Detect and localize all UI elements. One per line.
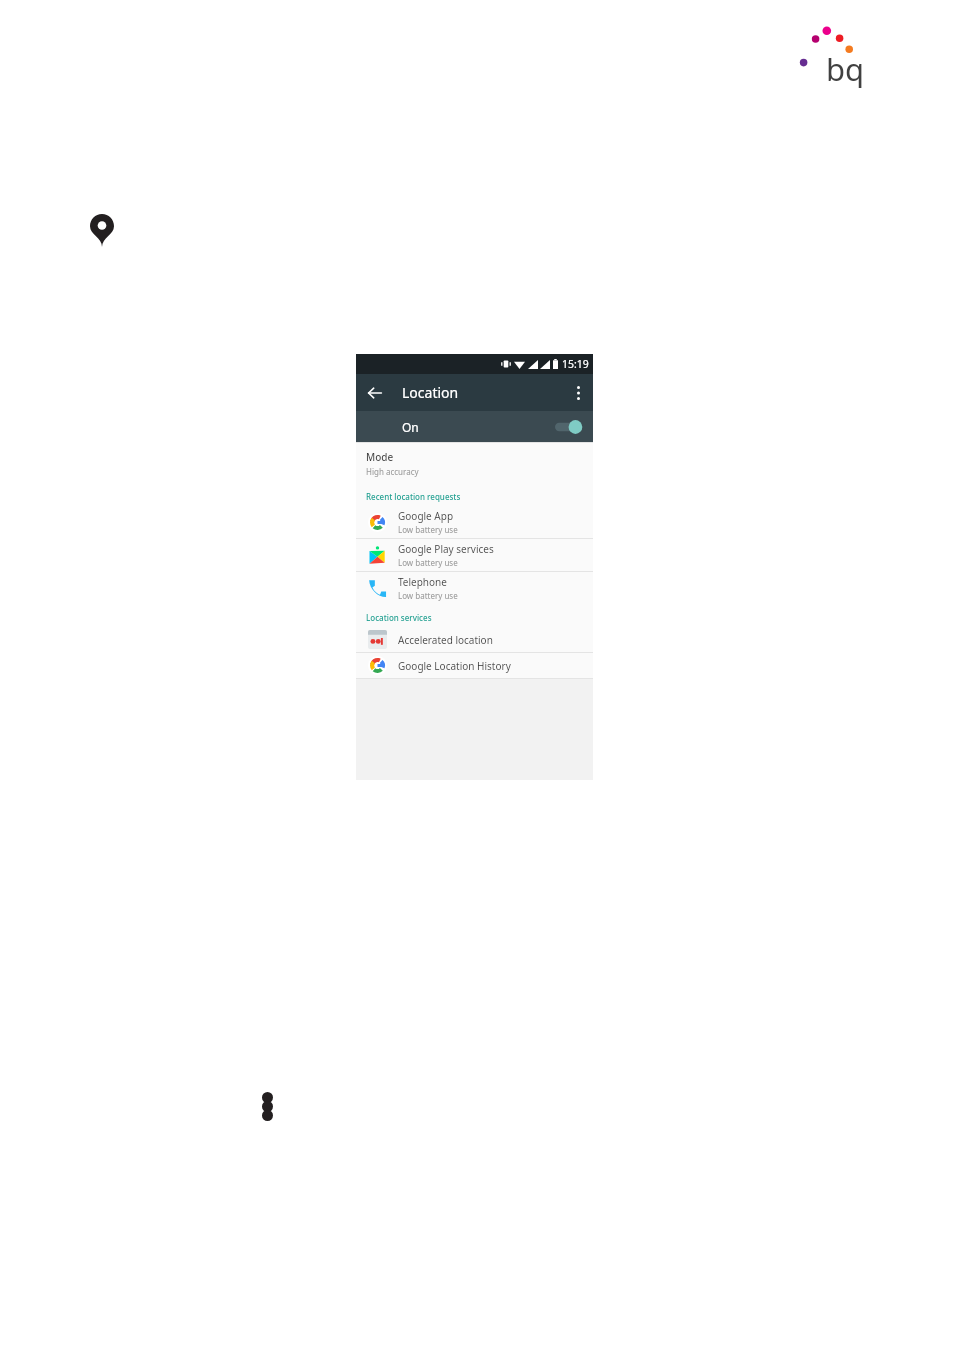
button[interactable]: Google Play services — [356, 539, 593, 571]
button[interactable]: Accelerated location — [356, 627, 593, 652]
staticText: Mode — [366, 450, 394, 464]
button[interactable]: On — [356, 411, 593, 442]
staticText: Telephone — [398, 575, 447, 589]
staticText: Location — [402, 383, 459, 402]
staticText: Recent location requests — [366, 491, 461, 502]
button[interactable]: Back — [356, 374, 394, 411]
staticText: Accelerated location — [398, 633, 493, 647]
button[interactable]: Google Location History — [356, 653, 593, 678]
staticText: Google Location History — [398, 659, 511, 673]
button[interactable]: Telephone — [356, 572, 593, 604]
staticText: 15:19 — [562, 357, 589, 371]
staticText: bq — [826, 48, 865, 90]
staticText: Low battery use — [398, 524, 458, 535]
button[interactable]: More options — [563, 374, 593, 411]
button[interactable]: Mode — [356, 443, 593, 483]
button[interactable]: Google App — [356, 506, 593, 538]
staticText: Google Play services — [398, 542, 494, 556]
staticText: Low battery use — [398, 590, 458, 601]
staticText: Google App — [398, 509, 454, 523]
staticText: Low battery use — [398, 557, 458, 568]
staticText: On — [402, 419, 419, 435]
staticText: Location services — [366, 612, 432, 623]
staticText: High accuracy — [366, 466, 419, 477]
